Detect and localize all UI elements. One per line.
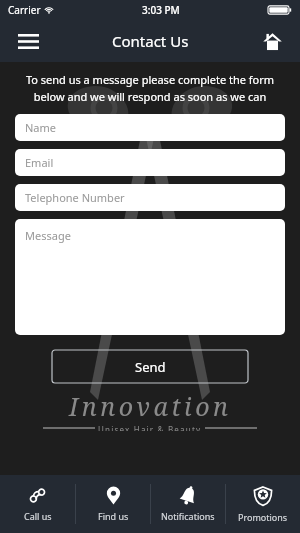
staticText: Email <box>25 155 54 170</box>
staticText: Send <box>135 358 166 376</box>
button[interactable]: Send <box>52 350 248 383</box>
button[interactable]: Telephone Number <box>15 184 285 211</box>
staticText: Message <box>25 228 71 243</box>
staticText: Call us <box>24 510 52 522</box>
button[interactable]: Call us <box>0 475 75 533</box>
button[interactable]: Find us <box>76 475 150 533</box>
staticText: To send us a message please complete the… <box>0 72 300 87</box>
button[interactable]: Promotions <box>226 475 300 533</box>
staticText: Name <box>25 120 57 135</box>
staticText: Carrier <box>8 3 41 17</box>
staticText: 3:03 PM <box>142 3 180 17</box>
button[interactable]: Message <box>15 219 285 335</box>
staticText: Find us <box>98 510 129 522</box>
button[interactable]: Email <box>15 149 285 176</box>
button[interactable]: Name <box>15 114 285 141</box>
staticText: Unisex Hair & Beauty <box>98 424 202 431</box>
staticText: Contact Us <box>112 31 189 51</box>
staticText: Telephone Number <box>25 190 125 205</box>
staticText: Notifications <box>161 510 215 522</box>
staticText: Innovation <box>69 389 232 423</box>
staticText: Promotions <box>238 511 288 523</box>
button[interactable]: Home <box>254 23 290 59</box>
staticText: below and we will respond as soon as we … <box>0 89 300 104</box>
button[interactable]: Notifications <box>151 475 225 533</box>
button[interactable]: Menu <box>10 23 46 59</box>
